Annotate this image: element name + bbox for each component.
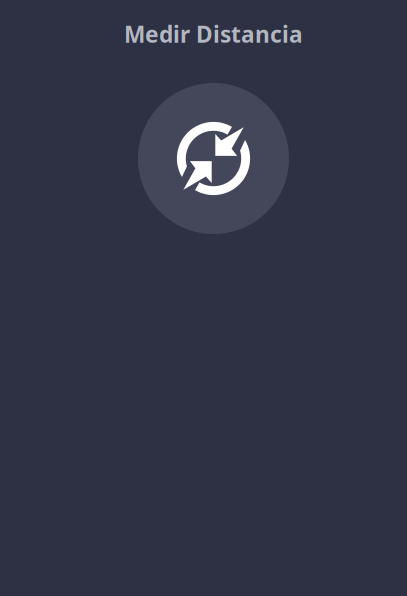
button[interactable]: Medir distancia	[138, 83, 289, 234]
staticText: Medir Distancia	[124, 19, 303, 49]
